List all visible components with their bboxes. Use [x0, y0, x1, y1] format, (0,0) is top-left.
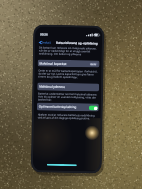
staticText: Indstil.: [42, 40, 52, 45]
staticText: 94 %: [91, 62, 97, 65]
staticText: Maksimal kapacitet: [40, 61, 67, 66]
button[interactable]: Maksimal kapacitet: [38, 59, 100, 68]
button[interactable]: Optimeret batteriopladning: [37, 102, 99, 112]
staticText: Maksimal ydeevne: [39, 84, 65, 89]
staticText: Batteriet understøtter normal maksimal y…: [38, 91, 99, 102]
button[interactable]: Tilbage til Indstillinger: [38, 39, 53, 46]
staticText: 09:36: [40, 32, 48, 37]
staticText: Batteritilstand og -opladning: [56, 41, 98, 45]
staticText: Dette er et mål for batterikapaciteten i…: [38, 68, 99, 79]
staticText: Optimeret batteriopladning: [39, 104, 77, 109]
staticText: Dit batteri kan reducere sin maksimale y…: [39, 45, 101, 56]
button[interactable]: Maksimal ydeevne: [37, 82, 99, 92]
staticText: Hjælper med at reducere batteriets nedsl…: [38, 112, 99, 120]
